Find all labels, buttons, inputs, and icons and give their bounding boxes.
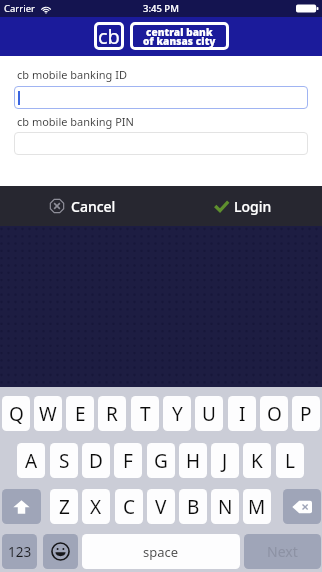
staticText: I (239, 401, 246, 427)
staticText: W (39, 401, 57, 427)
staticText: Q (9, 401, 24, 427)
button[interactable]: F (114, 443, 142, 478)
button[interactable]: M (243, 489, 271, 524)
staticText: H (186, 448, 201, 474)
button[interactable]: C (115, 489, 143, 524)
staticText: S (59, 448, 70, 474)
staticText: central bank (146, 25, 213, 39)
staticText: cb mobile banking PIN (17, 114, 134, 129)
button[interactable]: B (179, 489, 207, 524)
button[interactable]: O (260, 396, 288, 431)
staticText: J (222, 448, 228, 474)
button[interactable]: 123 (2, 534, 37, 569)
staticText: Y (172, 401, 183, 427)
staticText: P (300, 401, 312, 427)
staticText: V (155, 494, 167, 520)
staticText: cb (98, 23, 120, 50)
button[interactable]: L (276, 443, 304, 478)
staticText: Z (59, 494, 70, 520)
button[interactable]: Shift (2, 489, 41, 524)
staticText: L (285, 448, 295, 474)
staticText: A (25, 448, 38, 474)
button[interactable]: Login (214, 186, 322, 226)
staticText: Cancel (71, 197, 116, 216)
button[interactable]: E (66, 396, 94, 431)
button[interactable]: Q (2, 396, 30, 431)
button[interactable]: W (34, 396, 62, 431)
staticText: K (251, 448, 263, 474)
button[interactable]: H (179, 443, 207, 478)
button[interactable]: K (243, 443, 271, 478)
button[interactable]: J (211, 443, 239, 478)
staticText: 123 (8, 543, 32, 561)
button[interactable] (14, 132, 308, 155)
staticText: Next (267, 542, 298, 561)
button[interactable]: Z (50, 489, 78, 524)
staticText: 3:45 PM (143, 2, 179, 15)
button[interactable] (14, 86, 308, 109)
staticText: of kansas city (143, 34, 216, 48)
button[interactable]: G (147, 443, 175, 478)
staticText: T (140, 401, 151, 427)
staticText: space (143, 543, 179, 561)
button[interactable]: V (147, 489, 175, 524)
button[interactable]: I (228, 396, 256, 431)
button[interactable]: Backspace (283, 489, 321, 524)
staticText: X (90, 494, 102, 520)
staticText: D (89, 448, 103, 474)
staticText: Carrier (4, 2, 35, 15)
button[interactable]: Next (244, 534, 321, 569)
button[interactable]: U (195, 396, 223, 431)
button[interactable]: R (98, 396, 126, 431)
staticText: N (218, 494, 233, 520)
staticText: E (75, 401, 86, 427)
staticText: Login (234, 197, 272, 216)
staticText: R (106, 401, 118, 427)
button[interactable]: space (82, 534, 240, 569)
button[interactable]: P (292, 396, 320, 431)
button[interactable]: N (211, 489, 239, 524)
staticText: U (202, 401, 216, 427)
button[interactable]: A (17, 443, 45, 478)
staticText: B (187, 494, 200, 520)
button[interactable]: Emoji keyboard (43, 534, 78, 569)
staticText: F (123, 448, 133, 474)
staticText: C (123, 494, 136, 520)
button[interactable]: X (82, 489, 110, 524)
staticText: M (248, 494, 266, 520)
button[interactable]: D (82, 443, 110, 478)
button[interactable]: S (50, 443, 78, 478)
button[interactable]: Y (163, 396, 191, 431)
staticText: G (154, 448, 168, 474)
staticText: O (267, 401, 282, 427)
staticText: cb mobile banking ID (17, 67, 127, 82)
button[interactable]: Cancel (49, 186, 322, 226)
button[interactable]: T (131, 396, 159, 431)
